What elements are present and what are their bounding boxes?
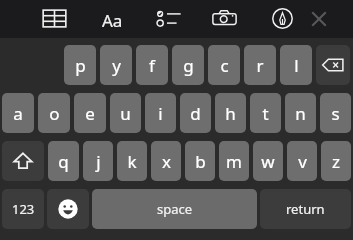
staticText: g: [183, 54, 194, 77]
staticText: j: [96, 150, 101, 173]
button[interactable]: p: [64, 45, 96, 85]
button[interactable]: l: [280, 45, 312, 85]
staticText: y: [112, 54, 121, 77]
button[interactable]: v: [287, 141, 317, 181]
button[interactable]: u: [110, 93, 141, 133]
button[interactable]: Backspace: [316, 45, 350, 85]
button[interactable]: Checklist: [155, 5, 182, 32]
staticText: p: [75, 54, 86, 77]
button[interactable]: Close: [306, 6, 332, 32]
button[interactable]: h: [215, 93, 246, 133]
button[interactable]: Text formatting: [97, 5, 127, 35]
button[interactable]: Insert table: [41, 5, 68, 32]
staticText: space: [157, 200, 193, 218]
button[interactable]: c: [208, 45, 240, 85]
staticText: b: [195, 150, 206, 173]
staticText: x: [162, 150, 171, 173]
button[interactable]: return: [260, 189, 351, 229]
staticText: z: [332, 150, 340, 173]
staticText: u: [120, 102, 131, 125]
staticText: e: [85, 102, 95, 125]
staticText: a: [13, 102, 23, 125]
button[interactable]: m: [219, 141, 249, 181]
button[interactable]: x: [151, 141, 181, 181]
staticText: h: [225, 102, 236, 125]
button[interactable]: Shift: [2, 141, 44, 181]
staticText: 123: [12, 200, 35, 218]
staticText: d: [190, 102, 201, 125]
button[interactable]: a: [2, 93, 34, 133]
staticText: t: [262, 102, 269, 125]
button[interactable]: z: [321, 141, 351, 181]
staticText: c: [220, 54, 229, 77]
button[interactable]: Emoji: [47, 189, 89, 229]
staticText: v: [298, 150, 307, 173]
staticText: w: [261, 150, 275, 173]
button[interactable]: i: [145, 93, 176, 133]
button[interactable]: f: [136, 45, 168, 85]
button[interactable]: d: [180, 93, 211, 133]
staticText: k: [127, 150, 137, 173]
staticText: n: [295, 102, 306, 125]
staticText: m: [226, 150, 242, 173]
button[interactable]: t: [250, 93, 281, 133]
staticText: o: [49, 102, 60, 125]
staticText: r: [256, 54, 264, 77]
button[interactable]: 123: [2, 189, 44, 229]
button[interactable]: Take photo: [211, 5, 238, 32]
button[interactable]: g: [172, 45, 204, 85]
button[interactable]: q: [48, 141, 79, 181]
button[interactable]: y: [100, 45, 132, 85]
button[interactable]: k: [117, 141, 147, 181]
button[interactable]: n: [285, 93, 316, 133]
button[interactable]: b: [185, 141, 215, 181]
button[interactable]: space: [92, 189, 257, 229]
staticText: i: [158, 102, 163, 125]
staticText: s: [331, 102, 340, 125]
staticText: l: [294, 54, 299, 77]
button[interactable]: r: [244, 45, 276, 85]
staticText: q: [58, 150, 69, 173]
staticText: return: [286, 200, 325, 218]
button[interactable]: Markup: [269, 5, 296, 32]
button[interactable]: s: [320, 93, 351, 133]
button[interactable]: e: [74, 93, 106, 133]
button[interactable]: w: [253, 141, 283, 181]
button[interactable]: o: [38, 93, 70, 133]
button[interactable]: j: [83, 141, 113, 181]
staticText: f: [149, 54, 155, 77]
staticText: Aa: [102, 9, 123, 32]
